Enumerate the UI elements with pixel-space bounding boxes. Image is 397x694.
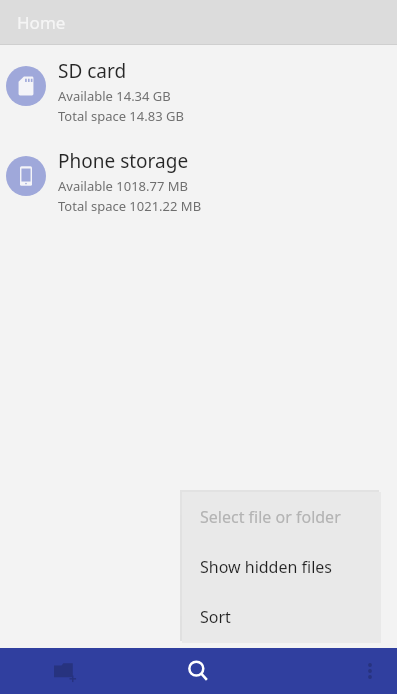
button[interactable]: New folder	[0, 648, 132, 694]
button[interactable]: Search	[132, 648, 264, 694]
staticText: Total space 1021.22 MB	[58, 197, 202, 215]
button[interactable]: Select file or folder	[182, 492, 381, 542]
button[interactable]: Show hidden files	[182, 542, 381, 592]
staticText: Home	[17, 11, 66, 34]
staticText: Available 14.34 GB	[58, 87, 171, 105]
button[interactable]: SD card	[0, 54, 397, 127]
staticText: Phone storage	[58, 148, 189, 174]
staticText: Select file or folder	[200, 506, 341, 528]
button[interactable]: Phone storage	[0, 144, 397, 217]
staticText: Show hidden files	[200, 556, 332, 578]
staticText: Sort	[200, 606, 231, 628]
staticText: Total space 14.83 GB	[58, 107, 184, 125]
button[interactable]: Sort	[182, 592, 381, 642]
staticText: Available 1018.77 MB	[58, 177, 188, 195]
staticText: SD card	[58, 58, 127, 84]
